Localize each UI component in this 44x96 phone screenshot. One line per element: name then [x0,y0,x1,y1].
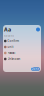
staticText: Unknown [7,57,20,61]
button[interactable]: Add [36,27,40,31]
button[interactable]: Unknown [3,56,40,62]
button[interactable]: Hawaii [3,50,40,56]
staticText: Confirm [7,39,18,43]
staticText: Aa [4,26,11,33]
staticText: Hawaii [7,51,15,55]
staticText: Done [31,67,39,71]
button[interactable]: unit [3,44,40,50]
staticText: Recent [4,34,14,38]
button[interactable]: Done [31,67,40,71]
button[interactable]: Confirm [3,38,40,44]
staticText: unit [7,45,13,49]
